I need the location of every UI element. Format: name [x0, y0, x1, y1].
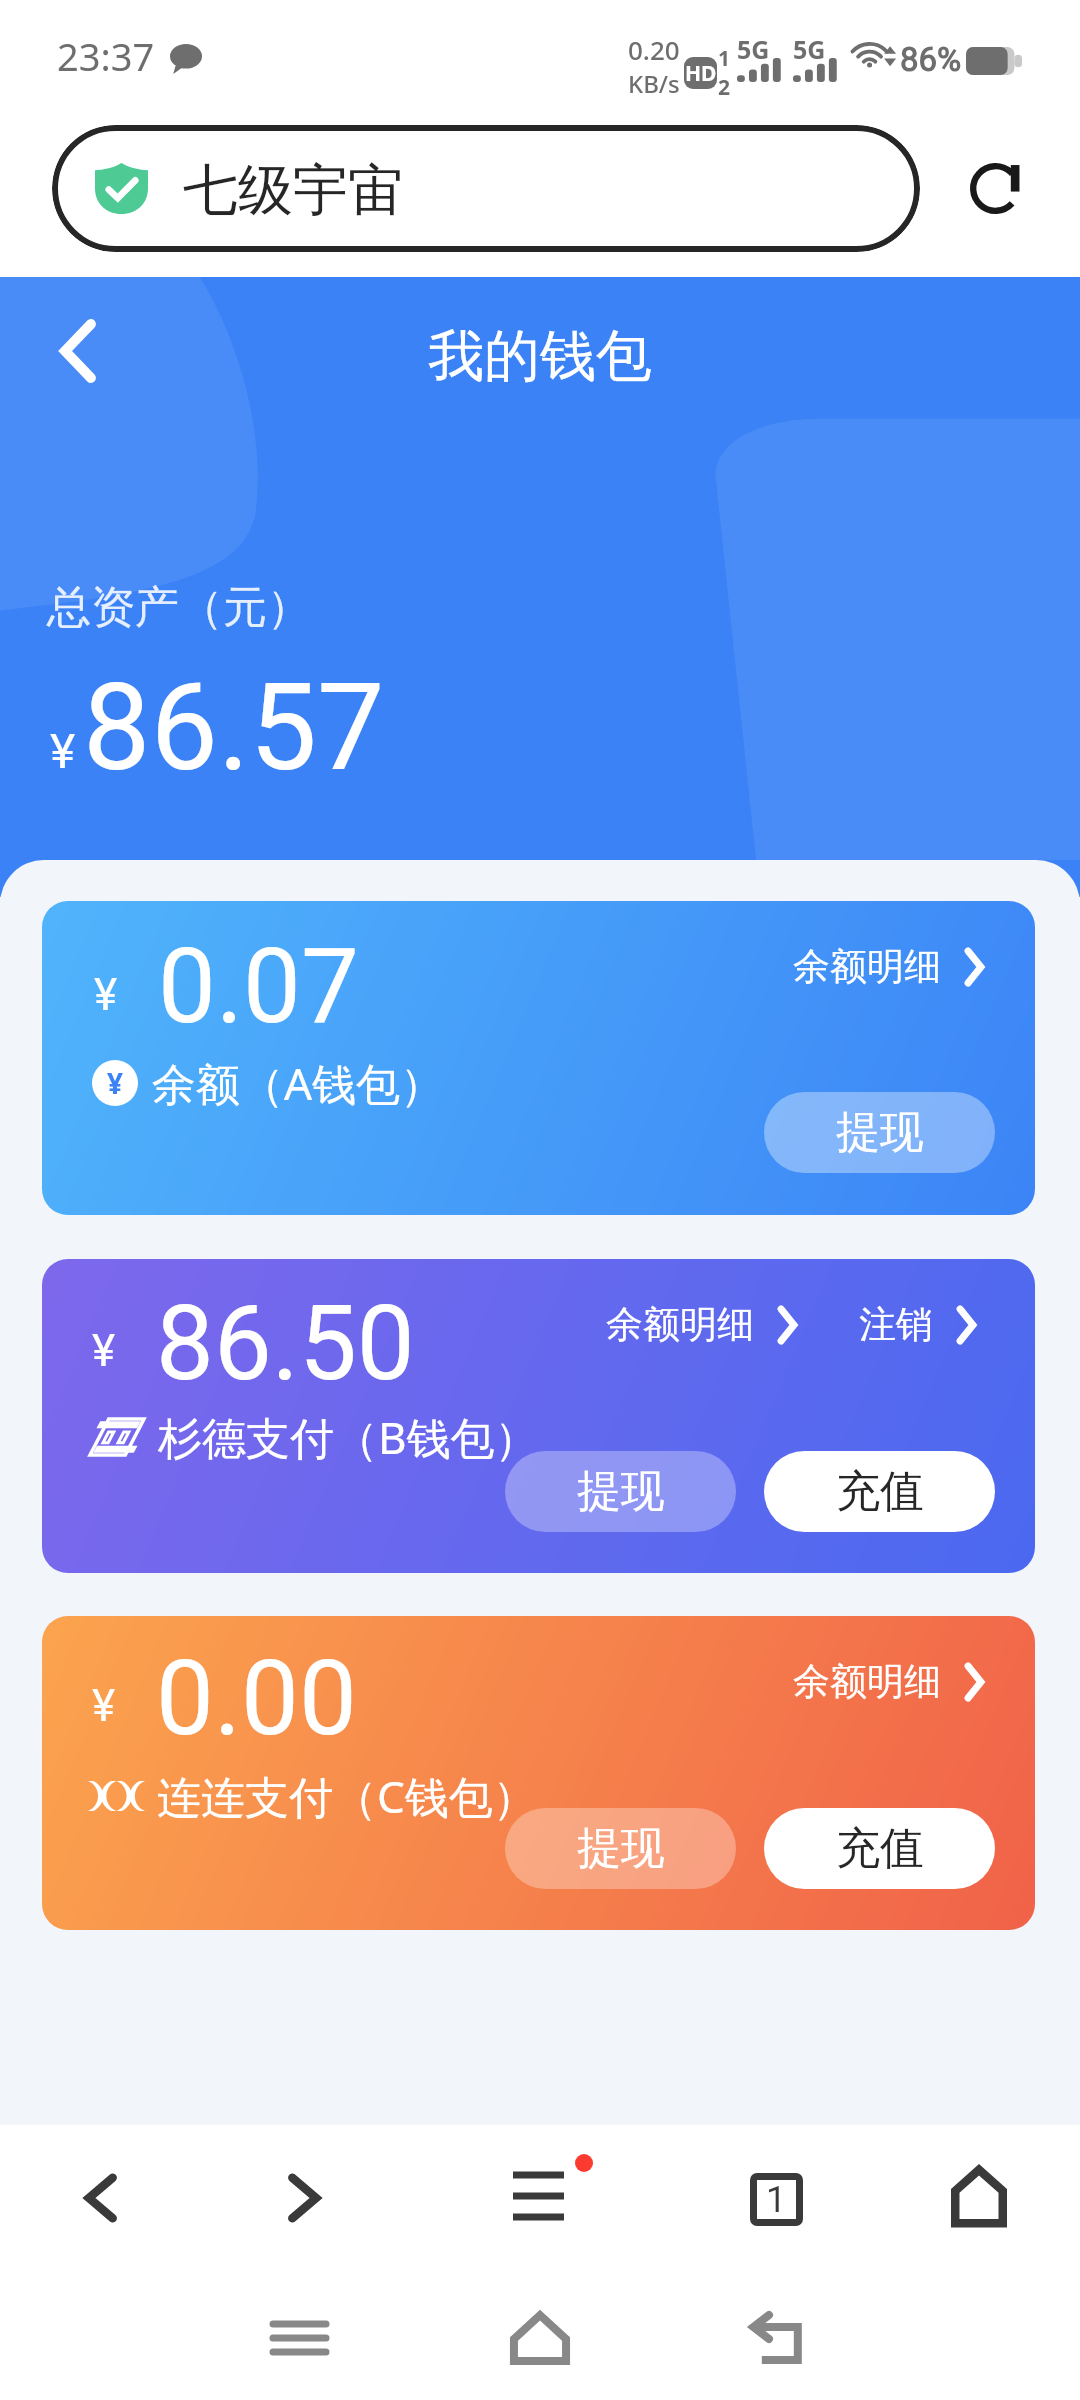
button[interactable]: Back	[19, 296, 137, 406]
staticText: 86.57	[83, 658, 385, 799]
button[interactable]: 充值	[764, 1808, 995, 1889]
button[interactable]: Refresh	[935, 125, 1055, 252]
staticText: 我的钱包	[428, 321, 652, 392]
staticText: 提现	[577, 1821, 665, 1876]
staticText: ¥	[50, 723, 76, 779]
staticText: 七级宇宙	[183, 156, 403, 225]
button[interactable]: 余额明细	[606, 1301, 799, 1348]
staticText: 充值	[836, 1821, 924, 1876]
staticText: 总资产（元）	[47, 580, 311, 635]
button[interactable]: 提现	[505, 1451, 736, 1532]
staticText: ¥	[92, 1325, 116, 1377]
staticText: 余额明细	[793, 943, 941, 990]
button[interactable]: ¥	[42, 901, 1035, 1215]
button[interactable]: Back	[700, 2286, 870, 2400]
staticText: 1	[718, 44, 731, 73]
staticText: KB/s	[628, 67, 680, 100]
staticText: 提现	[836, 1105, 924, 1160]
button[interactable]: 提现	[764, 1092, 995, 1173]
staticText: 0.00	[156, 1638, 357, 1759]
staticText: 0.07	[158, 926, 359, 1047]
button[interactable]: Forward	[220, 2135, 390, 2265]
staticText: 余额明细	[793, 1658, 941, 1705]
staticText: 提现	[577, 1464, 665, 1519]
staticText: 0.20	[628, 32, 680, 67]
staticText: 余额（A钱包）	[152, 1053, 445, 1113]
staticText: 注销	[859, 1301, 933, 1348]
staticText: ¥	[94, 969, 118, 1021]
button[interactable]: Recents	[200, 2286, 370, 2400]
staticText: 连连支付（C钱包）	[157, 1766, 537, 1826]
staticText: 5G	[737, 32, 770, 66]
staticText: ¥	[107, 1064, 124, 1102]
staticText: 5G	[793, 32, 826, 66]
staticText: ¥	[92, 1680, 116, 1732]
staticText: 余额明细	[606, 1301, 754, 1348]
button[interactable]: 提现	[505, 1808, 736, 1889]
button[interactable]: Menu	[455, 2135, 625, 2265]
button[interactable]: 七级宇宙	[52, 125, 920, 252]
staticText: 86%	[900, 40, 962, 79]
staticText: 2	[718, 73, 731, 102]
button[interactable]: ¥	[42, 1259, 1035, 1573]
button[interactable]: 余额明细	[793, 943, 986, 990]
button[interactable]: Back	[16, 2135, 186, 2265]
staticText: HD	[685, 59, 717, 88]
button[interactable]: ¥	[42, 1616, 1035, 1930]
button[interactable]: Home	[450, 2286, 620, 2400]
button[interactable]: Home	[895, 2135, 1065, 2265]
button[interactable]: 充值	[764, 1451, 995, 1532]
button[interactable]: Tabs	[690, 2135, 860, 2265]
staticText: 86.50	[156, 1283, 415, 1404]
staticText: 充值	[836, 1464, 924, 1519]
staticText: 杉德支付（B钱包）	[158, 1407, 539, 1467]
staticText: 1	[766, 2179, 787, 2221]
button[interactable]: 注销	[859, 1301, 978, 1348]
staticText: 23:37	[57, 30, 155, 82]
button[interactable]: 余额明细	[793, 1658, 986, 1705]
